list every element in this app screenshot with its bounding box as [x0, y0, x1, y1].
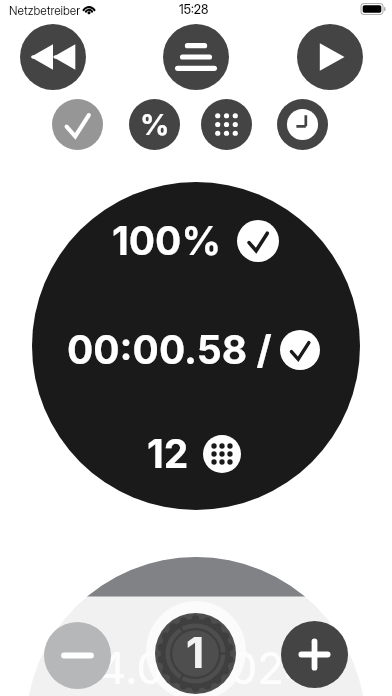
button[interactable]: Progress summary [32, 182, 360, 510]
button[interactable]: Timer [277, 99, 328, 150]
staticText: 00:00.58 / [67, 326, 272, 373]
button[interactable]: Gear step 1 [155, 613, 236, 694]
button[interactable]: Confirm [52, 99, 103, 150]
staticText: 12 [147, 430, 189, 477]
button[interactable]: Decrease [44, 622, 111, 689]
button[interactable]: Keypad [201, 99, 252, 150]
staticText: 15:28 [179, 2, 209, 17]
button[interactable]: Percent [129, 99, 180, 150]
button[interactable]: Menu [163, 24, 229, 90]
staticText: 14.06.2024 [0, 641, 392, 694]
staticText: % [140, 107, 170, 142]
button[interactable]: Rewind [20, 24, 86, 90]
staticText: 100% [112, 217, 222, 264]
button[interactable]: Play [297, 24, 363, 90]
button[interactable]: Increase [281, 621, 348, 688]
staticText: 1 [186, 627, 205, 678]
staticText: Netzbetreiber [9, 3, 81, 18]
